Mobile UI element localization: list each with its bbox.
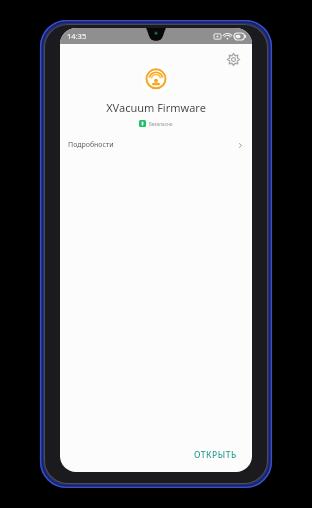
button[interactable]: Подробности — [60, 134, 252, 156]
staticText: XVacuum Firmware — [106, 100, 206, 115]
staticText: 14:35 — [67, 31, 87, 41]
button[interactable]: Settings — [222, 48, 244, 70]
staticText: ОТКРЫТЬ — [194, 449, 237, 461]
button[interactable]: ОТКРЫТЬ — [187, 445, 244, 465]
staticText: Подробности — [68, 140, 114, 150]
staticText: Безопасно — [149, 121, 173, 127]
